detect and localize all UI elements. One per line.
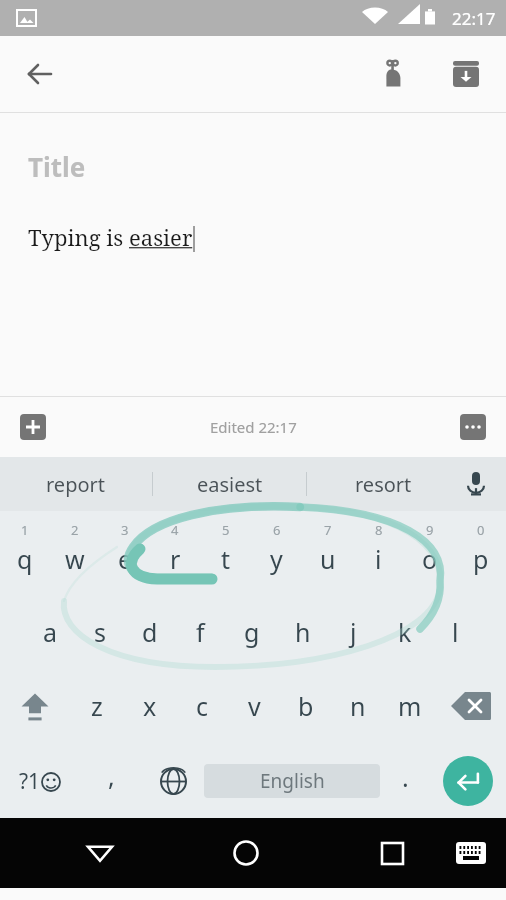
button[interactable]: easiest [153,457,306,511]
button[interactable]: z [70,669,123,743]
staticText: w [65,542,85,576]
staticText: z [91,689,103,723]
staticText: easier [129,222,193,252]
staticText: r [170,542,181,576]
button[interactable]: x [123,669,176,743]
button[interactable]: . [380,743,430,819]
staticText: f [196,615,205,649]
staticText: k [398,615,412,649]
staticText: l [452,615,459,649]
button[interactable]: k [379,595,430,669]
button[interactable]: c [176,669,228,743]
button[interactable]: Voice input [454,462,498,506]
staticText: h [295,615,311,649]
staticText: . [402,760,409,794]
button[interactable]: s [75,595,125,669]
staticText: 9 [426,521,434,539]
staticText: 0 [477,521,485,539]
staticText: d [142,615,158,649]
staticText: x [143,689,157,723]
button[interactable]: English [204,764,380,798]
button[interactable]: a [25,595,75,669]
button[interactable]: l [430,595,481,669]
button[interactable]: Archive [440,48,492,100]
button[interactable]: 3 [100,511,150,595]
staticText: 22:17 [452,7,496,30]
staticText: report [46,471,106,498]
staticText: Title [28,149,86,184]
button[interactable]: resort [307,457,460,511]
staticText: i [375,542,382,576]
button[interactable]: Switch keyboard [442,824,500,882]
staticText: j [350,615,357,649]
staticText: 7 [324,521,332,539]
button[interactable]: m [384,669,436,743]
staticText: m [398,689,422,723]
button[interactable]: report [0,457,152,511]
button[interactable]: 0 [455,511,506,595]
button[interactable]: d [125,595,175,669]
button[interactable]: More options [450,404,496,450]
button[interactable]: n [332,669,384,743]
staticText: ?1 [19,767,41,796]
staticText: 5 [222,521,230,539]
staticText: 3 [121,521,129,539]
button[interactable]: 8 [353,511,404,595]
button[interactable]: b [280,669,332,743]
staticText: 1 [21,521,29,539]
staticText: resort [355,471,412,498]
staticText: 4 [171,521,179,539]
staticText: t [221,542,231,576]
staticText: o [422,542,438,576]
button[interactable]: 4 [150,511,200,595]
staticText: easiest [197,471,263,498]
button[interactable]: f [175,595,226,669]
staticText: , [108,759,115,793]
staticText: English [260,768,325,794]
button[interactable]: 9 [404,511,455,595]
staticText: Typing is [28,222,129,252]
button[interactable]: Back [70,823,130,883]
staticText: b [298,689,314,723]
button[interactable]: 7 [302,511,353,595]
staticText: g [244,615,260,649]
button[interactable]: , [80,743,142,819]
button[interactable]: Enter [430,743,506,819]
button[interactable]: Change language [142,743,204,819]
staticText: Edited 22:17 [210,417,297,437]
button[interactable]: 6 [251,511,302,595]
button[interactable]: Pin note [366,48,418,100]
button[interactable]: v [228,669,280,743]
staticText: v [248,689,261,723]
button[interactable]: Back [14,48,66,100]
staticText: n [350,689,366,723]
button[interactable]: 1 [0,511,50,595]
button[interactable]: 5 [200,511,251,595]
staticText: u [320,542,336,576]
button[interactable]: Symbols and emoji [0,743,80,819]
button[interactable]: j [328,595,379,669]
staticText: 2 [71,521,79,539]
button[interactable]: Shift [0,669,70,743]
staticText: c [196,689,209,723]
staticText: 8 [375,521,383,539]
staticText: y [270,542,283,576]
button[interactable]: Backspace [436,669,506,743]
button[interactable]: Home [216,823,276,883]
button[interactable]: Add [10,404,56,450]
staticText: q [17,542,33,576]
staticText: a [43,615,58,649]
staticText: 6 [273,521,281,539]
button[interactable]: h [277,595,328,669]
button[interactable]: Recents [362,823,422,883]
button[interactable]: 2 [50,511,100,595]
staticText: s [94,615,106,649]
staticText: p [473,542,489,576]
button[interactable]: g [226,595,277,669]
staticText: e [118,542,133,576]
